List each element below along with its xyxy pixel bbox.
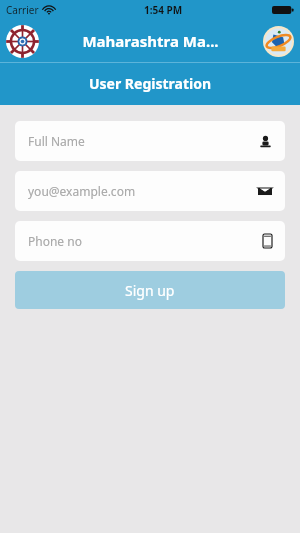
staticText: Carrier	[6, 3, 39, 17]
staticText: User Registration	[89, 74, 212, 93]
button[interactable]: Phone no	[15, 221, 285, 261]
button[interactable]: Maharashtra Maritime Board	[4, 23, 40, 59]
staticText: Full Name	[28, 133, 259, 149]
staticText: 1:54 PM	[144, 3, 183, 17]
button[interactable]: Full Name	[15, 121, 285, 161]
button[interactable]: MRSAC	[260, 23, 296, 59]
button[interactable]: Sign up	[15, 271, 285, 309]
button[interactable]: you@example.com	[15, 171, 285, 211]
staticText: Sign up	[125, 281, 175, 300]
staticText: Phone no	[28, 233, 263, 249]
staticText: Maharashtra Ma...	[82, 31, 219, 51]
staticText: you@example.com	[28, 183, 258, 199]
